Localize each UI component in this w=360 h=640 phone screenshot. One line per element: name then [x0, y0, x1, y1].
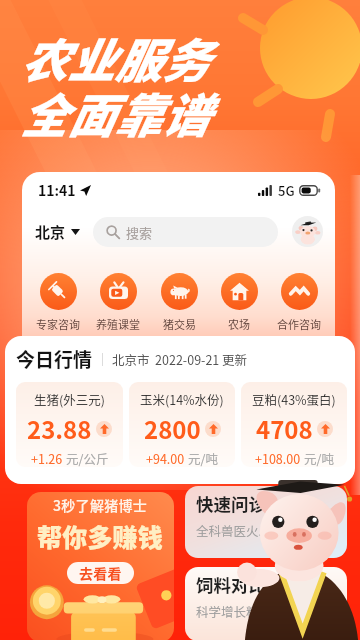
button[interactable]: 豆粕(43%蛋白) — [241, 382, 347, 467]
staticText: 快速问诊 — [196, 491, 266, 516]
staticText: 全面靠谱 — [20, 78, 209, 146]
staticText: 生猪(外三元) — [34, 390, 105, 408]
staticText: 猪交易 — [163, 316, 196, 332]
button[interactable]: 搜索 — [93, 217, 278, 247]
staticText: 元/吨 — [304, 449, 334, 467]
staticText: +1.26 — [31, 449, 63, 467]
button[interactable]: 去看看 — [67, 562, 134, 584]
button[interactable]: 农场 — [214, 273, 264, 332]
staticText: 饲料对比 — [196, 572, 266, 597]
staticText: 玉米(14%水份) — [140, 390, 224, 408]
button[interactable]: 猪交易 — [154, 273, 204, 332]
button[interactable]: 合作咨询 — [274, 273, 324, 332]
button[interactable]: 3秒了解猪博士 — [27, 492, 174, 640]
button[interactable]: 专家咨询 — [33, 273, 83, 332]
staticText: 4708 — [256, 411, 313, 446]
button[interactable]: 养殖课堂 — [93, 273, 143, 332]
button[interactable]: 饲料对比 — [185, 567, 347, 640]
button[interactable]: 快速问诊 — [185, 486, 347, 558]
staticText: 帮你多赚钱 — [37, 518, 164, 554]
button[interactable]: 玉米(14%水份) — [129, 382, 235, 467]
staticText: +108.00 — [255, 449, 301, 467]
staticText: 专家咨询 — [36, 316, 80, 332]
staticText: 全科兽医火... — [196, 521, 269, 539]
button[interactable]: Profile — [292, 216, 323, 247]
staticText: 去看看 — [79, 563, 122, 583]
staticText: 23.88 — [27, 411, 92, 446]
staticText: 北京市 2022-09-21 更新 — [112, 350, 248, 368]
staticText: 元/公斤 — [66, 449, 109, 467]
staticText: 5G — [278, 181, 295, 200]
staticText: +94.00 — [146, 449, 185, 467]
staticText: 今日行情 — [16, 345, 93, 373]
button[interactable]: 生猪(外三元) — [16, 382, 123, 467]
staticText: 搜索 — [126, 223, 153, 242]
button[interactable]: 北京 — [33, 215, 82, 249]
staticText: 农业服务 — [20, 23, 209, 91]
staticText: 元/吨 — [188, 449, 218, 467]
staticText: 2800 — [144, 411, 201, 446]
staticText: 北京 — [35, 221, 66, 243]
staticText: 3秒了解猪博士 — [53, 495, 148, 515]
staticText: 豆粕(43%蛋白) — [252, 390, 336, 408]
staticText: 11:41 — [38, 180, 76, 200]
staticText: 养殖课堂 — [96, 316, 140, 332]
staticText: 科学增长料肉比 — [196, 602, 284, 620]
staticText: 合作咨询 — [277, 316, 321, 332]
staticText: 农场 — [228, 316, 250, 332]
